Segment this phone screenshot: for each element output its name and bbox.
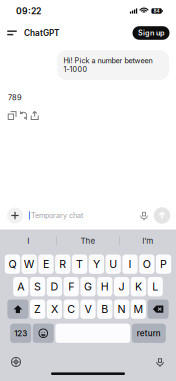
staticText: W [24, 258, 35, 271]
button[interactable]: Delete [148, 299, 169, 319]
button[interactable]: F [64, 277, 79, 296]
button[interactable]: Share [30, 110, 39, 121]
staticText: G [84, 280, 92, 293]
staticText: I [128, 258, 131, 271]
staticText: 123 [14, 328, 27, 338]
staticText: T [76, 258, 83, 271]
staticText: I'm [142, 236, 153, 246]
button[interactable]: A [13, 277, 28, 296]
button[interactable]: Dictate [136, 205, 152, 225]
button[interactable]: I'm [120, 229, 176, 252]
button[interactable]: L [148, 277, 163, 296]
staticText: N [118, 303, 126, 316]
staticText: L [152, 280, 158, 293]
button[interactable]: T [72, 254, 87, 274]
button[interactable]: D [47, 277, 62, 296]
button[interactable] [55, 324, 130, 343]
button[interactable]: Dictate [150, 352, 170, 372]
staticText: P [160, 258, 167, 271]
staticText: U [109, 258, 117, 271]
button[interactable]: Z [30, 299, 45, 319]
button[interactable]: P [156, 254, 171, 274]
button[interactable]: 123 [10, 324, 31, 343]
button[interactable]: V [80, 299, 96, 319]
button[interactable]: C [64, 299, 79, 319]
staticText: Hi! Pick a number between 1-1000 [63, 56, 152, 74]
button[interactable]: X [47, 299, 62, 319]
staticText: Z [34, 303, 41, 316]
button[interactable]: H [97, 277, 112, 296]
staticText: J [119, 280, 125, 293]
button[interactable]: Switch keyboard [6, 352, 26, 372]
button[interactable]: Q [5, 254, 20, 274]
staticText: S [34, 280, 41, 293]
staticText: X [51, 303, 58, 316]
button[interactable]: Add [5, 205, 25, 225]
button[interactable]: R [55, 254, 70, 274]
button[interactable]: O [139, 254, 154, 274]
staticText: D [50, 280, 58, 293]
staticText: Y [93, 258, 100, 271]
button[interactable]: Send [152, 205, 172, 225]
button[interactable]: K [131, 277, 146, 296]
staticText: E [43, 258, 49, 271]
staticText: K [135, 280, 142, 293]
staticText: F [68, 280, 74, 293]
button[interactable]: U [106, 254, 121, 274]
staticText: V [84, 303, 91, 316]
staticText: R [59, 258, 66, 271]
button[interactable]: N [114, 299, 129, 319]
button[interactable]: I [122, 254, 138, 274]
staticText: return [137, 328, 161, 338]
button[interactable]: W [22, 254, 37, 274]
button[interactable]: The [57, 229, 119, 252]
button[interactable]: Sidebar [3, 24, 21, 42]
staticText: 789 [8, 93, 22, 102]
button[interactable]: Temporary chat [25, 205, 136, 225]
button[interactable]: Emoji [33, 324, 54, 343]
staticText: 84 [154, 8, 160, 14]
staticText: Q [8, 258, 16, 271]
button[interactable]: Regenerate [19, 110, 28, 121]
staticText: M [133, 303, 143, 316]
button[interactable]: Shift [7, 299, 28, 319]
staticText: A [17, 280, 24, 293]
button[interactable]: ChatGPT [21, 24, 59, 42]
button[interactable]: Copy [8, 110, 17, 121]
button[interactable]: S [30, 277, 45, 296]
staticText: I [27, 236, 29, 246]
button[interactable]: I [0, 229, 56, 252]
staticText: C [67, 303, 75, 316]
staticText: ChatGPT [24, 28, 59, 38]
button[interactable]: J [114, 277, 129, 296]
button[interactable]: Y [89, 254, 104, 274]
staticText: The [80, 236, 95, 246]
button[interactable]: E [38, 254, 54, 274]
button[interactable]: return [132, 324, 166, 343]
staticText: O [143, 258, 151, 271]
button[interactable]: G [80, 277, 96, 296]
staticText: 09:22 [16, 6, 41, 16]
staticText: H [101, 280, 109, 293]
staticText: Sign up [138, 29, 164, 37]
staticText: Temporary chat [31, 211, 83, 220]
button[interactable]: B [97, 299, 112, 319]
button[interactable]: Sign up [132, 26, 169, 40]
staticText: B [101, 303, 108, 316]
button[interactable]: M [131, 299, 146, 319]
